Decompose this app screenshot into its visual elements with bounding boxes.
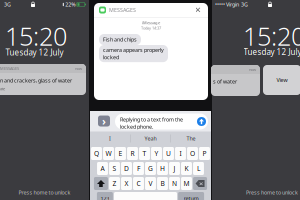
staticText: 123: [100, 195, 109, 200]
button[interactable]: A: [97, 162, 108, 175]
staticText: now: [75, 66, 82, 71]
staticText: F: [137, 164, 140, 173]
staticText: H: [160, 164, 165, 173]
staticText: R: [130, 149, 134, 158]
button[interactable]: View: [263, 65, 300, 95]
button[interactable]: Close: [193, 4, 203, 16]
button[interactable]: E: [115, 147, 126, 160]
staticText: Replying to a text from the locked phone…: [120, 116, 183, 130]
staticText: U: [166, 149, 171, 158]
staticText: D: [124, 164, 129, 173]
button[interactable]: U: [163, 147, 174, 160]
staticText: Press home to unlock: [246, 189, 298, 196]
staticText: The: [186, 135, 195, 142]
staticText: 3G: [2, 1, 11, 8]
staticText: S: [112, 164, 116, 173]
button[interactable]: I: [175, 147, 186, 160]
staticText: I: [179, 149, 181, 158]
staticText: 15:20: [5, 19, 67, 53]
staticText: T: [142, 149, 146, 158]
button[interactable]: C: [133, 177, 144, 190]
button[interactable]: Delete: [193, 177, 207, 190]
button[interactable]: Shift: [94, 177, 108, 190]
staticText: Tuesday 12 July: [243, 46, 300, 57]
button[interactable]: H: [157, 162, 168, 175]
button[interactable]: D: [121, 162, 132, 175]
button[interactable]: Q: [91, 147, 102, 160]
button[interactable]: 123: [97, 192, 113, 200]
staticText: O: [190, 149, 195, 158]
staticText: W: [105, 149, 111, 158]
staticText: return: [184, 195, 199, 200]
button[interactable]: Z: [109, 177, 120, 190]
staticText: MESSAGES: [0, 66, 19, 71]
button[interactable]: The: [171, 131, 211, 145]
staticText: iMessage: [142, 20, 160, 25]
staticText: I: [109, 135, 111, 142]
button[interactable]: V: [145, 177, 156, 190]
button[interactable]: O: [187, 147, 198, 160]
staticText: Y: [154, 149, 158, 158]
staticText: 22%: [65, 1, 75, 8]
staticText: ›: [102, 114, 106, 128]
staticText: n and crackers, glass of water: [0, 77, 72, 84]
button[interactable]: R: [127, 147, 138, 160]
button[interactable]: S: [109, 162, 120, 175]
button[interactable]: I: [90, 131, 130, 145]
button[interactable]: X: [121, 177, 132, 190]
staticText: A: [100, 164, 104, 173]
staticText: ate: [0, 86, 5, 91]
staticText: Z: [112, 179, 116, 188]
button[interactable]: J: [169, 162, 180, 175]
staticText: Press home to unlock: [18, 189, 70, 196]
staticText: View: [276, 76, 287, 84]
staticText: N: [172, 179, 177, 188]
staticText: Q: [94, 149, 99, 158]
button[interactable]: Send: [197, 117, 206, 126]
button[interactable]: F: [133, 162, 144, 175]
button[interactable]: Expand reply: [98, 115, 110, 126]
staticText: ✕: [194, 5, 201, 15]
button[interactable]: N: [169, 177, 180, 190]
button[interactable]: M: [181, 177, 192, 190]
staticText: E: [118, 149, 122, 158]
staticText: L: [197, 164, 200, 173]
button[interactable]: P: [199, 147, 210, 160]
staticText: Today 14:37: [141, 25, 161, 31]
staticText: M: [183, 179, 189, 188]
button[interactable]: T: [139, 147, 150, 160]
staticText: J: [173, 164, 175, 173]
staticText: B: [160, 179, 164, 188]
staticText: Yeah: [144, 135, 156, 142]
button[interactable]: K: [181, 162, 192, 175]
staticText: now: [249, 67, 256, 72]
staticText: MESSAGES: [109, 6, 136, 14]
staticText: ••••• Virgin 3G: [215, 1, 248, 8]
staticText: 15:20: [243, 19, 300, 53]
button[interactable]: G: [145, 162, 156, 175]
staticText: Fish and chips: [103, 36, 137, 43]
staticText: s of water: [213, 78, 237, 85]
button[interactable]: W: [103, 147, 114, 160]
staticText: camera appears properly locked: [103, 46, 164, 61]
button[interactable]: B: [157, 177, 168, 190]
button[interactable]: Y: [151, 147, 162, 160]
button[interactable]: return: [178, 192, 204, 200]
staticText: K: [184, 164, 188, 173]
button[interactable]: Yeah: [130, 131, 170, 145]
button[interactable]: L: [193, 162, 204, 175]
staticText: P: [202, 149, 206, 158]
staticText: X: [124, 179, 128, 188]
staticText: G: [148, 164, 153, 173]
staticText: Tuesday 12 July: [5, 47, 63, 58]
staticText: V: [148, 179, 152, 188]
staticText: C: [136, 179, 140, 188]
